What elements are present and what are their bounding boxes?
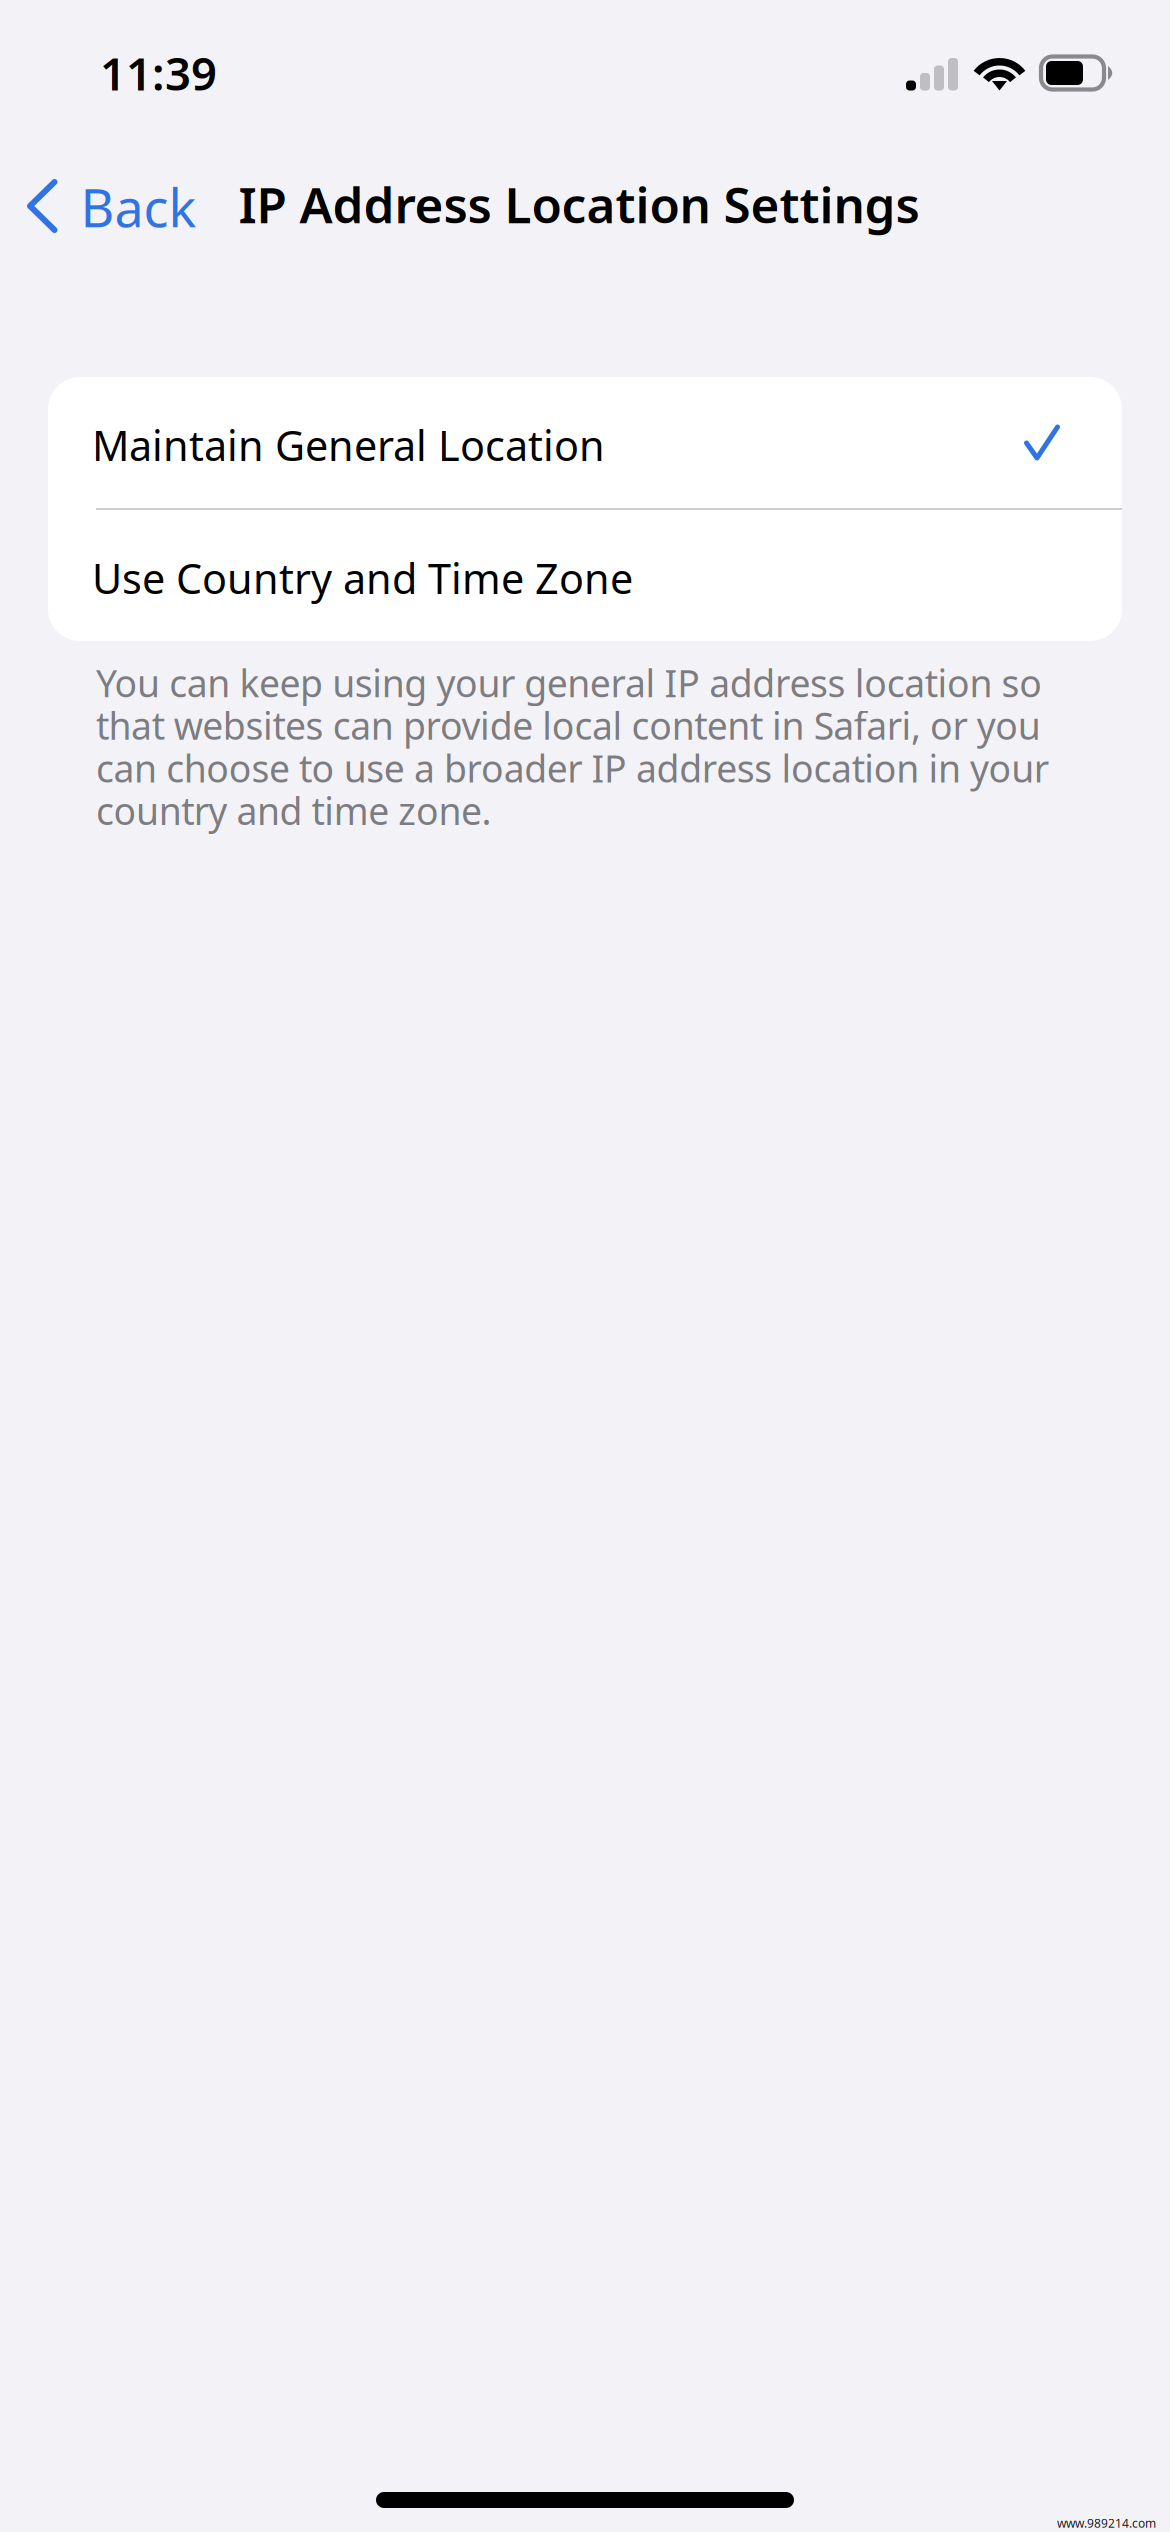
staticText: 11:39 bbox=[100, 43, 217, 103]
staticText: IP Address Location Settings bbox=[238, 171, 919, 237]
staticText: You can keep using your general IP addre… bbox=[96, 658, 1049, 835]
staticText: Use Country and Time Zone bbox=[92, 551, 633, 605]
button[interactable]: Back bbox=[0, 138, 220, 270]
staticText: www.989214.com bbox=[1057, 2515, 1156, 2531]
button[interactable]: Use Country and Time Zone bbox=[48, 510, 1122, 641]
staticText: Back bbox=[80, 172, 196, 242]
button[interactable]: Maintain General Location bbox=[48, 377, 1122, 508]
staticText: Maintain General Location bbox=[92, 418, 605, 472]
